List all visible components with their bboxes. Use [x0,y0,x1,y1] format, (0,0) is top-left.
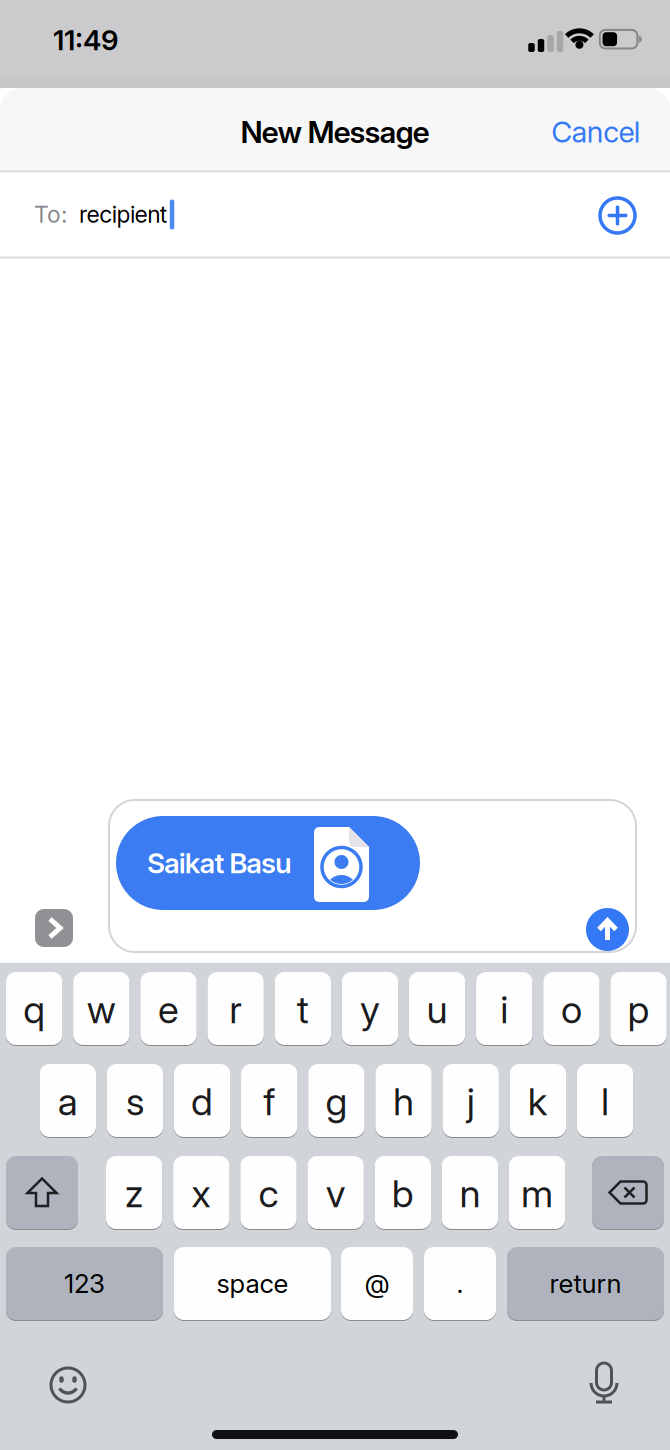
staticText: s [126,1078,144,1124]
staticText: 11:49 [53,23,119,57]
staticText: v [326,1170,346,1216]
staticText: k [528,1078,548,1124]
staticText: e [158,986,179,1032]
staticText: l [601,1078,609,1124]
staticText: p [628,986,650,1032]
staticText: Cancel [551,114,641,150]
button[interactable]: q [6,971,62,1046]
button[interactable]: g [308,1063,365,1138]
button[interactable]: r [207,971,264,1046]
button[interactable]: Cancel [551,114,641,150]
button[interactable] [35,909,73,947]
button[interactable]: u [409,971,465,1046]
button[interactable]: n [442,1155,498,1230]
staticText: w [87,986,116,1032]
staticText: d [191,1078,213,1124]
staticText: space [216,1268,288,1299]
staticText: h [393,1078,414,1124]
staticText: Saikat Basu [147,846,292,880]
button[interactable]: p [610,971,667,1046]
button[interactable]: b [375,1155,431,1230]
button[interactable]: k [510,1063,566,1138]
button[interactable] [109,800,636,952]
staticText: u [427,986,448,1032]
staticText: y [360,986,380,1032]
button[interactable] [592,1155,664,1230]
button[interactable]: @ [341,1246,413,1321]
button[interactable]: . [424,1246,496,1321]
staticText: recipient [79,201,167,228]
button[interactable]: s [107,1063,163,1138]
button[interactable]: 123 [6,1246,163,1321]
staticText: f [263,1078,275,1124]
button[interactable]: z [106,1155,162,1230]
staticText: q [23,986,45,1032]
button[interactable]: v [307,1155,364,1230]
button[interactable]: h [375,1063,432,1138]
staticText: 123 [64,1268,105,1299]
button[interactable]: i [476,971,532,1046]
button[interactable]: j [442,1063,499,1138]
button[interactable]: x [173,1155,230,1230]
button[interactable] [6,1155,78,1230]
staticText: g [325,1078,347,1124]
staticText: return [549,1268,621,1299]
staticText: @ [364,1268,389,1299]
button[interactable]: t [275,971,331,1046]
staticText: x [191,1170,211,1216]
button[interactable]: a [40,1063,96,1138]
button[interactable]: Saikat Basu [116,816,420,910]
staticText: r [229,986,242,1032]
button[interactable]: w [73,971,130,1046]
staticText: . [456,1268,463,1299]
button[interactable]: m [509,1155,565,1230]
staticText: m [521,1170,553,1216]
staticText: New Message [240,114,429,150]
button[interactable]: c [240,1155,297,1230]
button[interactable] [586,908,629,951]
staticText: o [561,986,582,1032]
button[interactable]: space [174,1246,331,1321]
button[interactable] [585,1361,623,1405]
button[interactable]: f [241,1063,297,1138]
button[interactable] [595,193,639,237]
staticText: i [500,986,508,1032]
button[interactable]: d [174,1063,230,1138]
staticText: j [467,1078,475,1124]
button[interactable]: l [577,1063,633,1138]
staticText: c [258,1170,278,1216]
button[interactable]: o [543,971,600,1046]
staticText: To: [34,201,67,228]
staticText: t [297,986,309,1032]
staticText: b [392,1170,414,1216]
button[interactable]: y [342,971,398,1046]
button[interactable]: e [140,971,197,1046]
button[interactable]: return [507,1246,664,1321]
staticText: n [459,1170,480,1216]
staticText: a [58,1078,78,1124]
staticText: z [125,1170,144,1216]
button[interactable] [49,1366,87,1404]
